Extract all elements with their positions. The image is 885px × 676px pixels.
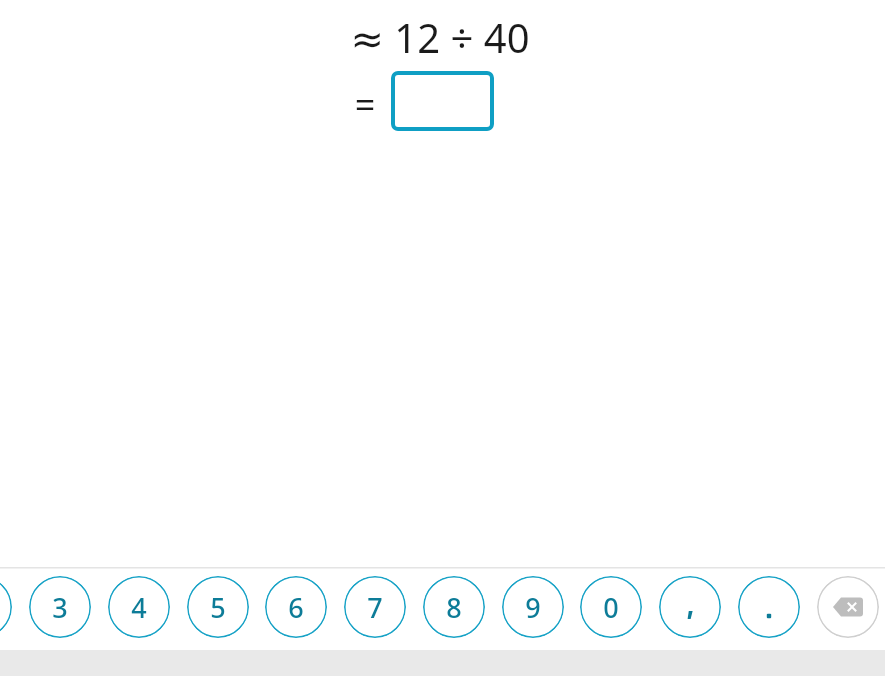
- button[interactable]: Decimal point: [738, 576, 800, 638]
- button[interactable]: 3: [29, 576, 91, 638]
- staticText: 4: [131, 589, 147, 626]
- staticText: 7: [367, 589, 383, 626]
- button[interactable]: 0: [580, 576, 642, 638]
- button[interactable]: 5: [187, 576, 249, 638]
- button[interactable]: 2: [0, 576, 12, 638]
- staticText: 8: [446, 589, 462, 626]
- staticText: 3: [52, 589, 68, 626]
- button[interactable]: 8: [423, 576, 485, 638]
- staticText: 5: [210, 589, 226, 626]
- staticText: ≈ 12 ÷ 40: [290, 10, 590, 62]
- button[interactable]: Backspace: [817, 576, 879, 638]
- staticText: =: [345, 80, 385, 124]
- button[interactable]: 9: [502, 576, 564, 638]
- button[interactable]: 4: [108, 576, 170, 638]
- button[interactable]: Answer input: [391, 71, 494, 131]
- staticText: 6: [288, 589, 304, 626]
- staticText: 0: [603, 589, 619, 626]
- staticText: 9: [525, 589, 541, 626]
- button[interactable]: 6: [265, 576, 327, 638]
- button[interactable]: 7: [344, 576, 406, 638]
- button[interactable]: Comma: [659, 576, 721, 638]
